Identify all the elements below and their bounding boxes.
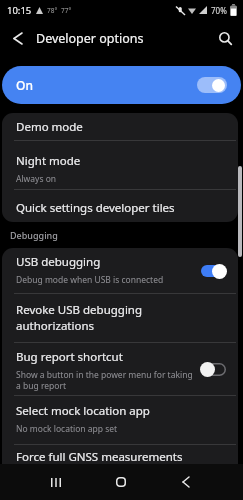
staticText: 70% — [211, 5, 227, 16]
staticText: Debug mode when USB is connected — [16, 274, 164, 286]
button[interactable]: Night mode — [2, 141, 238, 189]
staticText: Night mode — [16, 153, 81, 169]
staticText: Select mock location app — [16, 403, 150, 419]
button[interactable]: On — [2, 66, 241, 104]
button[interactable] — [104, 465, 138, 499]
staticText: 78° — [47, 6, 58, 15]
staticText: Bug report shortcut — [16, 349, 123, 365]
button[interactable]: Bug report shortcut — [2, 343, 238, 395]
button[interactable] — [207, 20, 243, 56]
button[interactable]: Quick settings developer tiles — [2, 190, 238, 222]
button[interactable]: Select mock location app — [2, 396, 238, 444]
button[interactable]: Force full GNSS measurements — [2, 445, 238, 464]
staticText: 10:15 — [7, 4, 32, 17]
button[interactable] — [169, 465, 203, 499]
button[interactable] — [39, 465, 73, 499]
staticText: Revoke USB debugging authorizations — [16, 302, 143, 333]
staticText: Show a button in the power menu for taki… — [16, 369, 193, 391]
button[interactable] — [0, 20, 36, 56]
staticText: Developer options — [36, 30, 144, 47]
staticText: Force full GNSS measurements — [16, 449, 183, 464]
staticText: Debugging — [10, 229, 58, 241]
staticText: Demo mode — [16, 119, 83, 135]
button[interactable]: USB debugging — [2, 248, 238, 293]
button[interactable]: Demo mode — [2, 113, 238, 140]
staticText: Always on — [16, 173, 57, 185]
staticText: 77° — [61, 6, 72, 15]
staticText: No mock location app set — [16, 423, 118, 435]
button[interactable]: Revoke USB debugging authorizations — [2, 294, 238, 342]
staticText: On — [16, 77, 33, 93]
staticText: Quick settings developer tiles — [16, 200, 175, 216]
staticText: USB debugging — [16, 254, 101, 270]
